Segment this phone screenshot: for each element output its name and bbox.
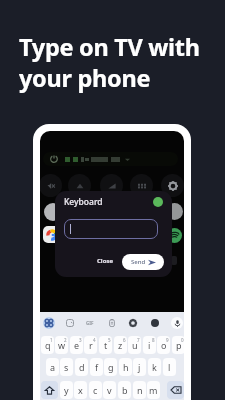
button[interactable]: Quick setting 0 [40, 174, 62, 197]
staticText: y [64, 384, 69, 396]
staticText: Keyboard [64, 196, 103, 208]
staticText: e [74, 339, 80, 351]
staticText: j [138, 361, 141, 373]
button[interactable]: y [60, 381, 73, 399]
staticText: o [161, 339, 167, 351]
button[interactable]: x [74, 381, 87, 399]
button[interactable]: h [119, 358, 132, 376]
staticText: 9 [166, 337, 169, 343]
button[interactable]: Quick setting 2 [100, 174, 123, 197]
staticText: d [79, 361, 85, 373]
staticText: 3 [79, 337, 82, 343]
staticText: w [58, 339, 66, 351]
button[interactable]: Send [122, 254, 164, 270]
button[interactable]: v [103, 381, 116, 399]
staticText: i [148, 339, 151, 351]
staticText: c [93, 384, 98, 396]
staticText: 2 [64, 337, 67, 343]
staticText: g [108, 361, 114, 373]
staticText: z [118, 339, 123, 351]
button[interactable]: 3 [70, 336, 83, 354]
button[interactable]: m [147, 381, 160, 399]
button[interactable]: d [75, 358, 88, 376]
button[interactable]: f [90, 358, 103, 376]
button[interactable]: 9 [157, 336, 170, 354]
staticText: 5 [108, 337, 111, 343]
staticText: v [107, 384, 112, 396]
staticText: Send [131, 258, 146, 266]
button[interactable]: Clipboard [108, 319, 116, 327]
staticText: 0 [181, 337, 184, 343]
button[interactable]: Voice input [171, 317, 183, 329]
button[interactable]: Emoji [43, 317, 55, 329]
staticText: 7 [137, 337, 140, 343]
button[interactable]: 6 [114, 336, 127, 354]
staticText: q [45, 339, 51, 351]
button[interactable]: 1 [41, 336, 54, 354]
button[interactable]: Quick setting 1 [68, 174, 91, 197]
staticText: Close [97, 257, 113, 265]
staticText: n [137, 384, 143, 396]
button[interactable]: j [133, 358, 146, 376]
button[interactable]: Shift [41, 381, 58, 399]
staticText: t [104, 339, 108, 351]
staticText: Type on TV with your phone [19, 31, 200, 94]
staticText: x [78, 384, 83, 396]
button[interactable]: Close [93, 253, 117, 269]
button[interactable]: 0 [172, 336, 184, 354]
button[interactable]: 2 [55, 336, 68, 354]
button[interactable]: g [104, 358, 117, 376]
staticText: m [149, 384, 158, 396]
button[interactable]: Settings [129, 319, 137, 327]
staticText: r [89, 339, 93, 351]
staticText: u [132, 339, 138, 351]
staticText: 6 [123, 337, 126, 343]
staticText: l [168, 361, 171, 373]
button[interactable]: c [89, 381, 102, 399]
button[interactable]: k [148, 358, 161, 376]
button[interactable]: Theme [151, 319, 159, 327]
staticText: p [176, 339, 182, 351]
button[interactable]: Backspace [167, 381, 184, 399]
staticText: GIF [86, 320, 94, 326]
button[interactable]: Stickers [66, 319, 74, 327]
staticText: f [95, 361, 99, 373]
button[interactable]: b [118, 381, 131, 399]
button[interactable]: a [46, 358, 59, 376]
staticText: 4 [93, 337, 96, 343]
button[interactable]: 7 [128, 336, 141, 354]
staticText: a [50, 361, 56, 373]
button[interactable]: Quick setting 3 [130, 174, 153, 197]
staticText: s [64, 361, 69, 373]
button[interactable]: GIF [86, 320, 94, 326]
staticText: 1 [50, 337, 53, 343]
button[interactable]: 4 [84, 336, 97, 354]
button[interactable]: 8 [143, 336, 156, 354]
staticText: 8 [152, 337, 155, 343]
button[interactable]: Quick setting 4 [161, 174, 184, 197]
staticText: k [152, 361, 157, 373]
button[interactable]: 5 [99, 336, 112, 354]
staticText: h [123, 361, 129, 373]
button[interactable]: l [163, 358, 176, 376]
staticText: b [122, 384, 128, 396]
button[interactable]: n [133, 381, 146, 399]
button[interactable]: s [60, 358, 73, 376]
